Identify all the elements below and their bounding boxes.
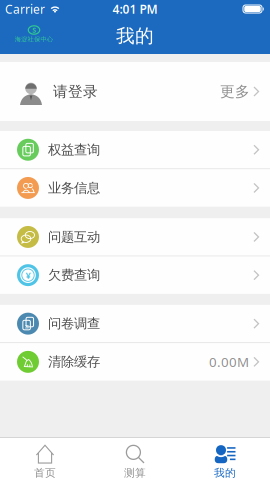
staticText: 清除缓存 <box>48 354 100 370</box>
staticText: 问卷调查 <box>48 315 100 332</box>
button[interactable]: 测算 <box>90 438 180 480</box>
staticText: 我的 <box>116 24 154 47</box>
staticText: 问题互动 <box>48 229 100 245</box>
button[interactable]: 海淀社保中心 <box>0 25 60 47</box>
staticText: 权益查询 <box>48 142 100 158</box>
staticText: 4:01 PM <box>112 1 157 17</box>
staticText: 测算 <box>124 466 146 479</box>
staticText: 0.00M <box>209 353 249 371</box>
button[interactable]: ¥ <box>0 256 270 294</box>
button[interactable]: 业务信息 <box>0 169 270 207</box>
staticText: 请登录 <box>53 82 98 100</box>
staticText: 欠费查询 <box>48 267 100 283</box>
staticText: 业务信息 <box>48 180 100 196</box>
button[interactable]: 请登录 <box>0 62 270 121</box>
button[interactable]: 问卷调查 <box>0 305 270 342</box>
staticText: 我的 <box>214 466 236 479</box>
button[interactable]: 问题互动 <box>0 218 270 256</box>
staticText: 更多 <box>220 82 250 100</box>
staticText: 海淀社保中心 <box>10 34 58 44</box>
staticText: ¥ <box>25 269 30 281</box>
button[interactable]: 我的 <box>180 438 270 480</box>
staticText: Carrier <box>5 1 45 17</box>
staticText: 首页 <box>34 466 56 479</box>
staticText: S <box>32 25 36 35</box>
button[interactable]: 清除缓存 <box>0 343 270 381</box>
button[interactable]: 首页 <box>0 438 90 480</box>
button[interactable]: 权益查询 <box>0 131 270 168</box>
